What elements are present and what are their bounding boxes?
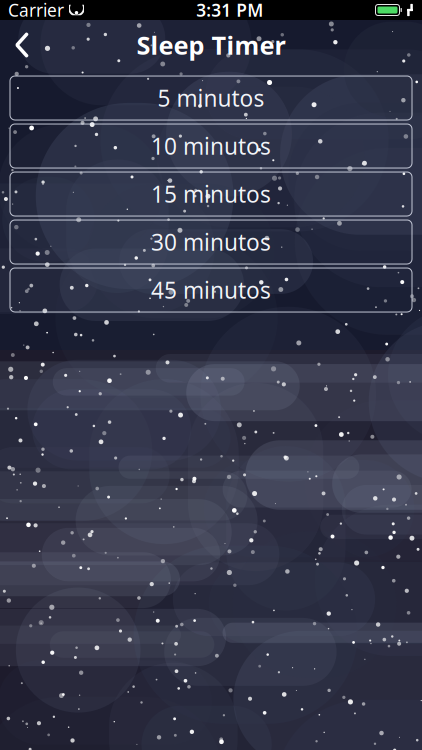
button[interactable]: 30 minutos	[10, 220, 412, 264]
staticText: 30 minutos	[151, 227, 271, 257]
staticText: 3:31 PM	[196, 0, 263, 21]
staticText: 45 minutos	[151, 275, 271, 305]
staticText: Sleep Timer	[136, 28, 285, 62]
button[interactable]: 5 minutos	[10, 76, 412, 120]
button[interactable]: Back	[0, 23, 44, 67]
staticText: Carrier	[8, 0, 64, 21]
button[interactable]: 15 minutos	[10, 172, 412, 216]
button[interactable]: 10 minutos	[10, 124, 412, 168]
staticText: 5 minutos	[157, 83, 264, 113]
staticText: 15 minutos	[151, 179, 271, 209]
button[interactable]: 45 minutos	[10, 268, 412, 312]
staticText: 10 minutos	[151, 131, 271, 161]
